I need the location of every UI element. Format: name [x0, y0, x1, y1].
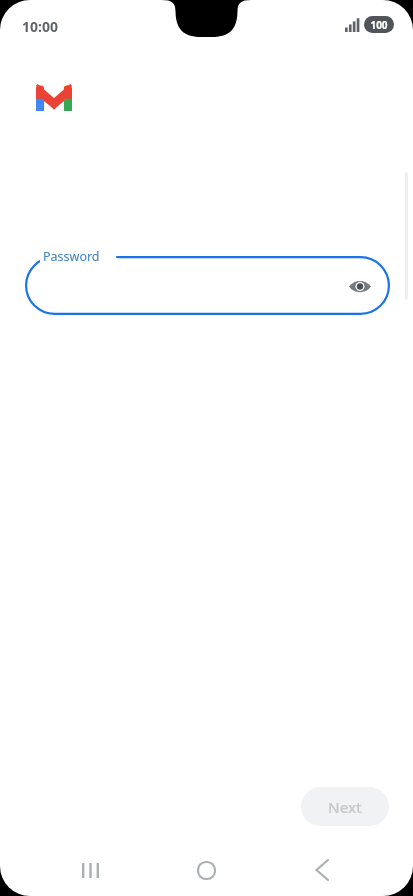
staticText: 100	[370, 18, 388, 32]
button[interactable]: Home	[164, 844, 248, 896]
button[interactable]: Back	[280, 844, 364, 896]
button[interactable]: Show password	[343, 269, 377, 303]
staticText: Password	[43, 248, 100, 264]
staticText: 10:00	[22, 17, 58, 36]
button[interactable]: Next	[301, 787, 389, 826]
staticText: Next	[328, 797, 362, 817]
button[interactable]: Show password	[25, 256, 390, 315]
button[interactable]: Recent apps	[48, 844, 132, 896]
